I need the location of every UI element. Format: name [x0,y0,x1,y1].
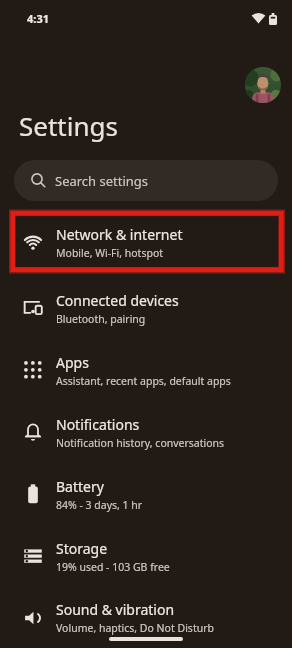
button[interactable]: Battery [0,463,292,525]
staticText: Battery [56,477,104,496]
staticText: Settings [19,108,118,143]
staticText: Network & internet [56,225,183,244]
button[interactable] [245,67,281,103]
staticText: Search settings [55,172,149,190]
staticText: Notifications [56,415,140,434]
staticText: 84% - 3 days, 1 hr [56,498,143,512]
staticText: Bluetooth, pairing [56,312,146,326]
staticText: Mobile, Wi-Fi, hotspot [56,246,164,260]
staticText: 4:31 [27,11,49,26]
staticText: Connected devices [56,291,179,310]
staticText: Sound & vibration [56,600,175,619]
button[interactable]: Sound & vibration [0,587,292,648]
button[interactable]: Apps [0,339,292,401]
button[interactable]: Notifications [0,401,292,463]
staticText: Volume, haptics, Do Not Disturb [56,621,214,635]
button[interactable]: Connected devices [0,277,292,339]
button[interactable]: Network & internet [0,207,292,277]
staticText: Assistant, recent apps, default apps [56,374,231,388]
staticText: 19% used - 103 GB free [56,560,170,574]
staticText: Storage [56,539,108,558]
button[interactable]: Storage [0,525,292,587]
staticText: Notification history, conversations [56,436,225,450]
button[interactable]: Search settings [14,160,278,201]
staticText: Apps [56,353,89,372]
